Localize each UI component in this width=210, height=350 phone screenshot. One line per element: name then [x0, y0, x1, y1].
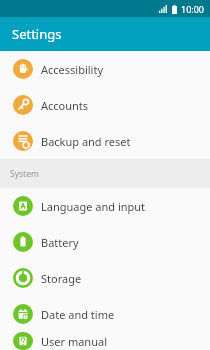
button[interactable]: Storage	[0, 260, 210, 296]
staticText: Accessibility	[41, 62, 104, 77]
staticText: Date and time	[41, 307, 115, 322]
staticText: Language and input	[41, 199, 146, 214]
button[interactable]: Accessibility	[0, 51, 210, 87]
button[interactable]: Battery	[0, 224, 210, 260]
staticText: Backup and reset	[41, 134, 131, 149]
staticText: Battery	[41, 235, 79, 250]
staticText: 10:00	[181, 3, 205, 15]
button[interactable]: Backup and reset	[0, 123, 210, 159]
button[interactable]: Language and input	[0, 188, 210, 224]
button[interactable]: Accounts	[0, 87, 210, 123]
staticText: Accounts	[41, 98, 89, 113]
staticText: Storage	[41, 271, 82, 286]
staticText: System	[10, 168, 39, 180]
staticText: Settings	[12, 25, 62, 43]
staticText: User manual	[41, 334, 107, 349]
button[interactable]: Date and time	[0, 296, 210, 332]
button[interactable]: User manual	[0, 332, 210, 350]
